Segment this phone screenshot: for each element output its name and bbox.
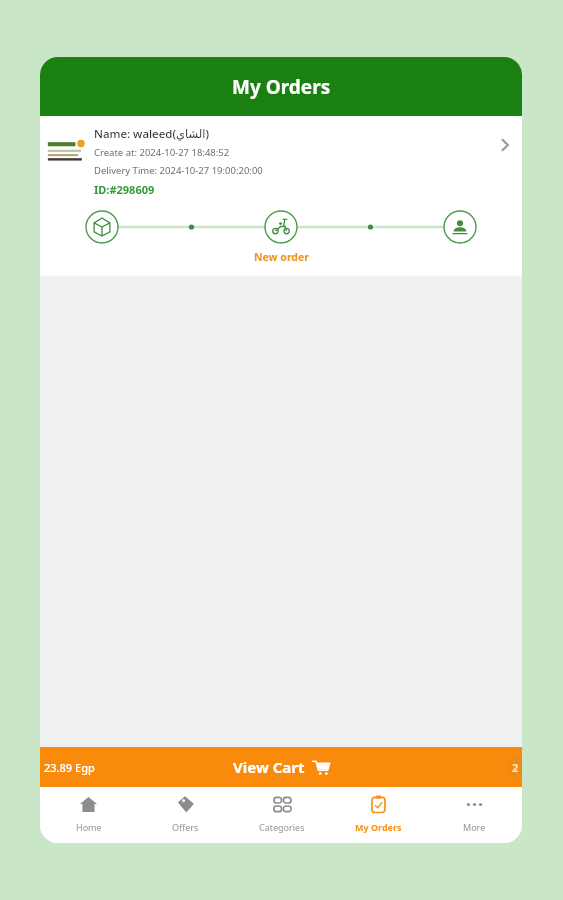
staticText: More <box>463 821 486 833</box>
staticText: New order <box>254 250 309 264</box>
button[interactable]: My Orders <box>330 787 426 843</box>
staticText: My Orders <box>355 821 402 833</box>
staticText: Categories <box>259 821 305 833</box>
button[interactable]: More <box>426 787 522 843</box>
button[interactable]: Categories <box>234 787 330 843</box>
staticText: Home <box>76 821 102 833</box>
button[interactable]: Open order details <box>488 130 522 160</box>
button[interactable]: Name: waleed(الشاي) <box>40 116 522 276</box>
staticText: Delivery Time: 2024-10-27 19:00:20:00 <box>94 164 263 177</box>
staticText: Create at: 2024-10-27 18:48:52 <box>94 146 230 159</box>
button[interactable]: 23.89 Egp <box>40 747 522 787</box>
staticText: My Orders <box>232 74 331 100</box>
staticText: 2 <box>512 760 519 775</box>
staticText: View Cart <box>233 757 305 777</box>
button[interactable]: Home <box>40 787 137 843</box>
staticText: Name: waleed(الشاي) <box>94 126 210 142</box>
staticText: Offers <box>172 821 199 833</box>
staticText: 23.89 Egp <box>44 760 95 775</box>
button[interactable]: Offers <box>137 787 234 843</box>
staticText: ID:#298609 <box>94 182 155 197</box>
